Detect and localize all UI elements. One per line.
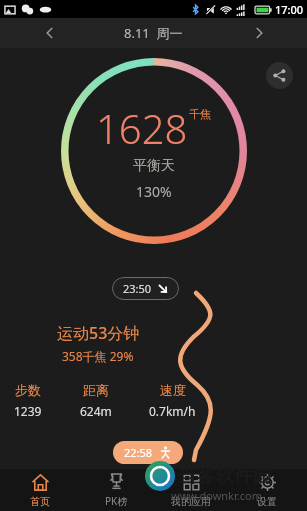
button[interactable]: 22:58 xyxy=(113,441,183,464)
button[interactable]: 23:50 xyxy=(112,277,179,300)
staticText: 0.7km/h xyxy=(149,403,196,419)
staticText: 步数 xyxy=(15,382,41,398)
staticText: 千焦 xyxy=(189,107,211,121)
button[interactable]: Previous day xyxy=(38,21,62,45)
staticText: 1628 xyxy=(96,101,188,155)
button[interactable]: 设置 xyxy=(232,470,302,511)
staticText: www.downkr.com xyxy=(171,488,262,503)
staticText: 8.11 周一 xyxy=(124,24,183,42)
staticText: 22:58 xyxy=(124,445,153,460)
staticText: PK榜 xyxy=(105,494,128,508)
staticText: 设置 xyxy=(257,495,277,508)
staticText: 平衡天 xyxy=(133,157,175,175)
staticText: 我的应用 xyxy=(171,495,211,508)
staticText: 17:00 xyxy=(275,2,304,17)
staticText: 624m xyxy=(80,403,112,419)
staticText: 运动53分钟 xyxy=(57,322,140,344)
staticText: 1239 xyxy=(14,403,42,419)
button[interactable]: PK榜 xyxy=(81,469,151,511)
staticText: 130% xyxy=(136,182,172,201)
staticText: 距离 xyxy=(83,382,109,398)
staticText: 当客软件园 xyxy=(177,464,272,488)
staticText: 23:50 xyxy=(123,281,152,296)
staticText: 速度 xyxy=(160,382,186,398)
staticText: 首页 xyxy=(30,495,50,508)
button[interactable]: 首页 xyxy=(5,470,75,511)
staticText: 358千焦 29% xyxy=(62,348,134,364)
button[interactable]: Next day xyxy=(247,21,271,45)
button[interactable]: Share xyxy=(266,62,293,89)
button[interactable]: 我的应用 xyxy=(156,470,226,511)
